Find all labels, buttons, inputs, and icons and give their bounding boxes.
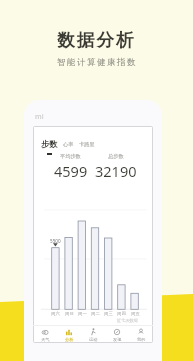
- staticText: 平均步数: [60, 153, 81, 160]
- button[interactable]: 心率: [63, 141, 74, 148]
- button[interactable]: 分析: [57, 328, 81, 342]
- staticText: 天气: [41, 337, 50, 342]
- staticText: 4599: [54, 161, 88, 181]
- button[interactable]: 天气: [33, 328, 57, 342]
- staticText: 周二: [91, 311, 100, 317]
- staticText: 发现: [113, 337, 122, 342]
- staticText: mi: [35, 112, 44, 122]
- button[interactable]: 我的: [129, 328, 153, 342]
- button[interactable]: 运动: [81, 328, 105, 342]
- staticText: 32190: [95, 161, 137, 181]
- staticText: 5500: [50, 238, 61, 244]
- staticText: 心率: [63, 141, 74, 148]
- staticText: 总步数: [108, 153, 124, 160]
- staticText: 运动: [89, 337, 98, 342]
- staticText: 周五: [131, 311, 140, 317]
- staticText: 周三: [104, 311, 113, 317]
- button[interactable]: 发现: [105, 328, 129, 342]
- staticText: 我的: [137, 337, 146, 342]
- staticText: 近七天数据: [117, 318, 138, 323]
- staticText: 分析: [65, 337, 74, 342]
- staticText: 周六: [51, 311, 60, 317]
- staticText: 步数: [41, 139, 58, 149]
- button[interactable]: 卡路里: [79, 141, 95, 148]
- staticText: 数据分析: [57, 29, 136, 51]
- staticText: 周四: [117, 311, 126, 317]
- button[interactable]: 步数: [41, 139, 58, 155]
- staticText: 周日: [65, 311, 74, 317]
- staticText: 卡路里: [79, 141, 95, 148]
- staticText: 智能计算健康指数: [57, 57, 137, 68]
- staticText: 周一: [78, 311, 87, 317]
